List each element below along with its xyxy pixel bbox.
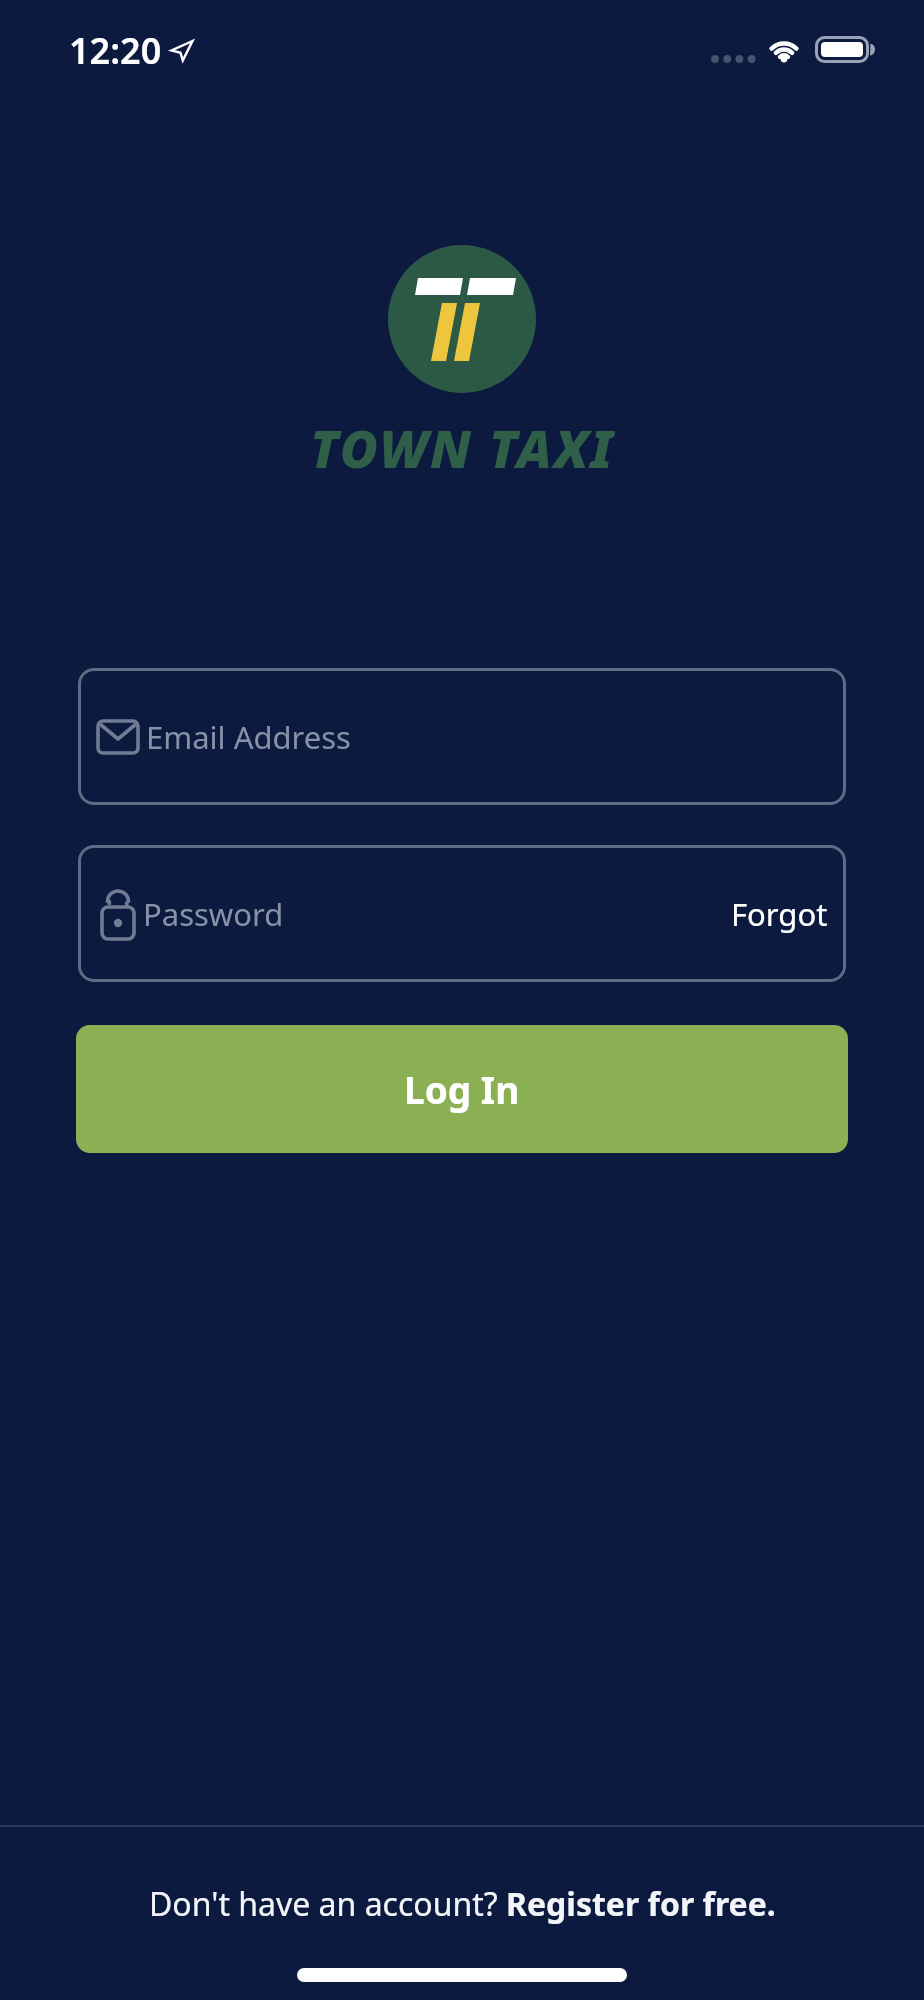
button[interactable]: Password — [78, 845, 846, 982]
button[interactable]: Forgot — [731, 893, 828, 935]
staticText: 12:20 — [69, 26, 162, 75]
staticText: Forgot — [731, 893, 828, 935]
staticText: Password — [143, 893, 284, 935]
staticText: Don't have an account? Register for free… — [149, 1882, 776, 1926]
staticText: Email Address — [146, 716, 351, 758]
button[interactable]: Log In — [76, 1025, 848, 1153]
button[interactable]: Email Address — [78, 668, 846, 805]
staticText: TOWN TAXI — [310, 412, 615, 478]
staticText: Log In — [404, 1064, 520, 1114]
button[interactable]: Don't have an account? Register for free… — [0, 1868, 924, 1940]
